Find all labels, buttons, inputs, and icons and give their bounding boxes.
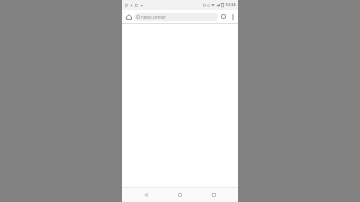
- button[interactable]: news.center: [134, 13, 218, 21]
- button[interactable]: Switch tabs: [218, 10, 229, 23]
- staticText: news.center: [141, 14, 167, 20]
- button[interactable]: Home: [123, 10, 134, 23]
- button[interactable]: Home: [170, 188, 190, 202]
- button[interactable]: Recent apps: [204, 188, 224, 202]
- button[interactable]: Back: [136, 188, 156, 202]
- staticText: 10:34: [225, 2, 236, 8]
- button[interactable]: More options: [229, 10, 237, 23]
